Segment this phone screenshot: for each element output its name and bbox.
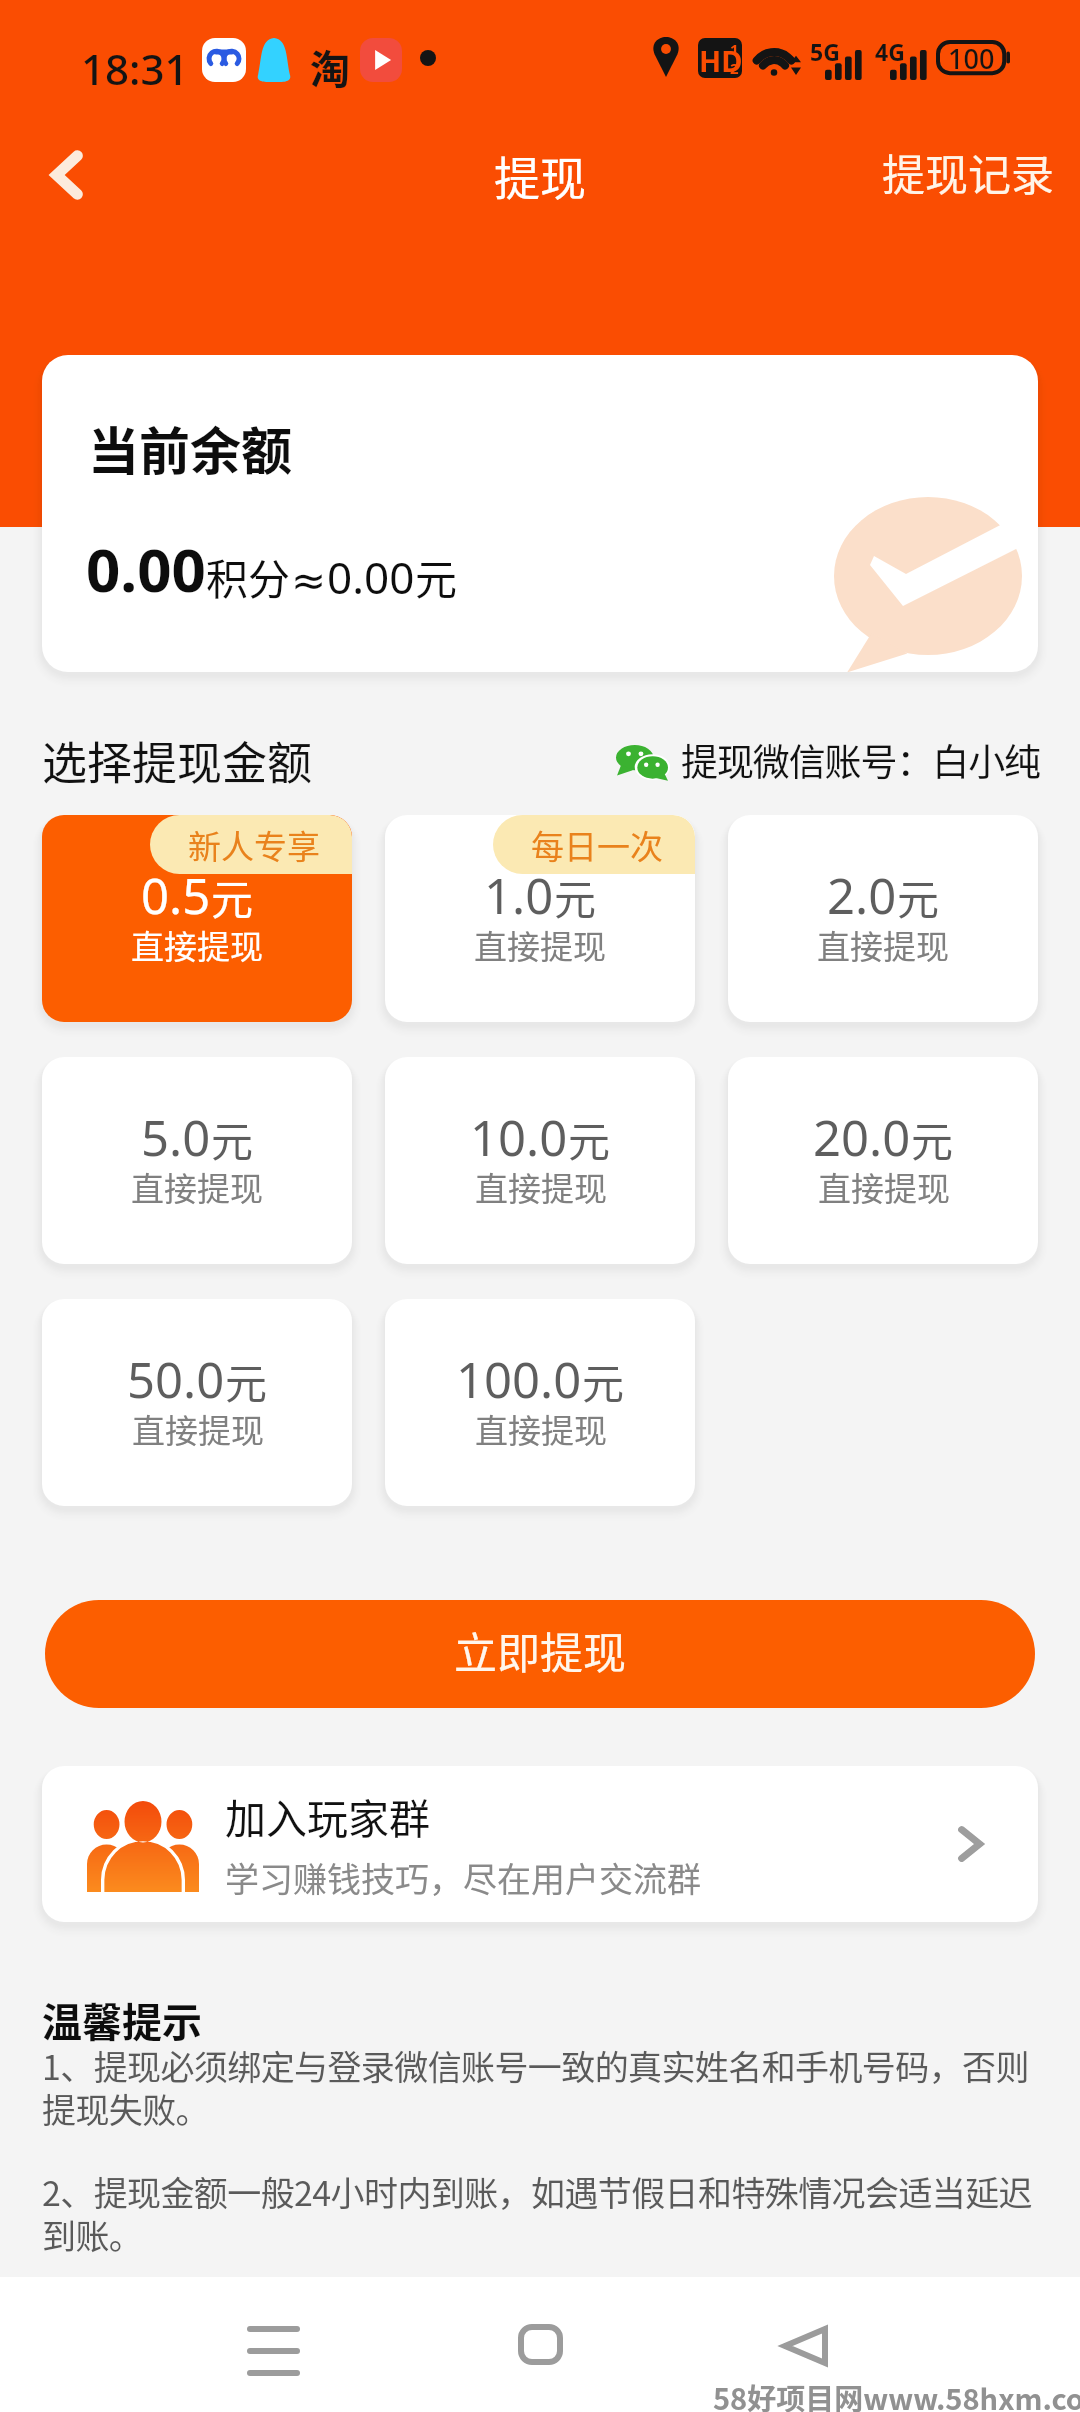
button[interactable]: 每日一次	[385, 815, 695, 1022]
staticText: 元	[568, 1108, 611, 1169]
staticText: 10.0	[470, 1104, 568, 1171]
staticText: 元	[225, 1350, 268, 1411]
staticText: 0.00	[86, 528, 206, 610]
staticText: 100	[948, 40, 995, 77]
button[interactable]: Recents	[224, 2303, 324, 2403]
button[interactable]: Back	[30, 138, 104, 212]
staticText: 5.0	[141, 1104, 211, 1171]
staticText: 直接提现	[474, 921, 606, 969]
staticText: 提现记录	[882, 141, 1054, 203]
staticText: 2、提现金额一般24小时内到账，如遇节假日和特殊情况会适当延迟到账。	[42, 2167, 1038, 2259]
staticText: 5G	[810, 36, 840, 67]
button[interactable]: Back	[755, 2303, 855, 2403]
staticText: 元	[554, 866, 597, 927]
staticText: 元	[911, 1108, 954, 1169]
staticText: 提现	[494, 142, 586, 209]
button[interactable]: 提现记录	[856, 130, 1080, 220]
staticText: 选择提现金额	[42, 728, 313, 793]
staticText: 直接提现	[818, 1163, 950, 1211]
staticText: 加入玩家群	[225, 1786, 430, 1845]
button[interactable]: 5.0	[42, 1057, 352, 1264]
button[interactable]: 50.0	[42, 1299, 352, 1506]
staticText: 0.00	[327, 547, 415, 607]
staticText: 58好项目网www.58hxm.com	[713, 2376, 1080, 2412]
staticText: 直接提现	[475, 1405, 607, 1453]
staticText: 元	[415, 546, 458, 607]
staticText: 直接提现	[475, 1163, 607, 1211]
staticText: 2	[730, 58, 739, 78]
staticText: HD	[699, 41, 742, 78]
button[interactable]: 新人专享	[42, 815, 352, 1022]
button[interactable]: 立即提现	[45, 1600, 1035, 1708]
staticText: 20.0	[813, 1104, 911, 1171]
staticText: 学习赚钱技巧，尽在用户交流群	[225, 1853, 701, 1902]
button[interactable]: 100.0	[385, 1299, 695, 1506]
staticText: 直接提现	[817, 921, 949, 969]
staticText: 100.0	[456, 1346, 582, 1413]
staticText: 1	[730, 39, 739, 59]
staticText: 直接提现	[131, 1163, 263, 1211]
staticText: 元	[211, 1108, 254, 1169]
button[interactable]: 20.0	[728, 1057, 1038, 1264]
staticText: 淘	[310, 38, 350, 96]
button[interactable]: 10.0	[385, 1057, 695, 1264]
staticText: 50.0	[127, 1346, 225, 1413]
button[interactable]: 加入玩家群	[42, 1766, 1038, 1922]
staticText: 每日一次	[531, 821, 663, 869]
staticText: 18:31	[81, 40, 189, 97]
staticText: 直接提现	[131, 921, 263, 969]
staticText: 温馨提示	[42, 1991, 202, 2049]
button[interactable]: Home	[491, 2303, 591, 2403]
staticText: 元	[897, 866, 940, 927]
staticText: 立即提现	[454, 1619, 626, 1681]
staticText: 新人专享	[188, 821, 320, 869]
staticText: 4G	[875, 36, 905, 67]
staticText: 1.0	[484, 862, 554, 929]
staticText: 2.0	[827, 862, 897, 929]
staticText: 0.5	[141, 862, 211, 929]
staticText: ≈	[291, 556, 327, 605]
staticText: 元	[211, 866, 254, 927]
staticText: 当前余额	[88, 411, 293, 485]
button[interactable]: 2.0	[728, 815, 1038, 1022]
staticText: 积分	[206, 546, 291, 607]
staticText: 提现微信账号：白小纯	[681, 733, 1040, 787]
staticText: 1、提现必须绑定与登录微信账号一致的真实姓名和手机号码，否则提现失败。	[42, 2041, 1038, 2133]
staticText: 直接提现	[132, 1405, 264, 1453]
staticText: 元	[582, 1350, 625, 1411]
